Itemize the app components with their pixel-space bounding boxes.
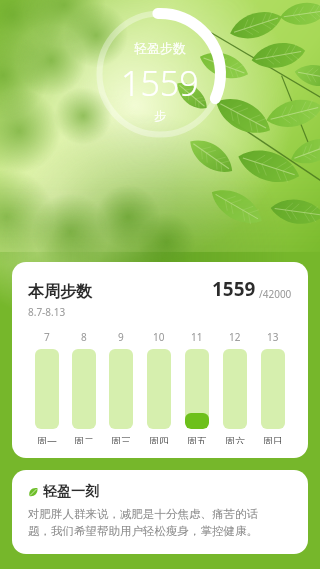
staticText: 8 [81,330,87,344]
staticText: 周四 [149,435,169,444]
button[interactable]: 本周步数 [12,262,308,458]
staticText: 周日 [263,435,283,444]
staticText: /42000 [259,287,292,301]
staticText: 7 [44,330,50,344]
staticText: 本周步数 [28,282,92,302]
staticText: 轻盈步数 [134,40,186,56]
button[interactable]: Leaf [12,470,308,554]
staticText: 对肥胖人群来说，减肥是十分焦虑、痛苦的话 题，我们希望帮助用户轻松瘦身，掌控健康… [28,507,258,538]
staticText: 1559 [212,276,256,302]
staticText: 13 [267,330,279,344]
staticText: 轻盈一刻 [43,483,99,501]
staticText: 周五 [187,435,207,444]
staticText: 周二 [74,435,94,444]
staticText: 周一 [37,435,57,444]
staticText: 1559 [121,60,199,106]
staticText: 11 [191,330,203,344]
staticText: 周三 [111,435,131,444]
staticText: 周六 [225,435,245,444]
staticText: 8.7-8.13 [28,305,66,319]
staticText: 12 [229,330,241,344]
staticText: 9 [118,330,124,344]
staticText: 步 [154,108,166,123]
other: Leaf [28,487,38,497]
staticText: 10 [153,330,165,344]
